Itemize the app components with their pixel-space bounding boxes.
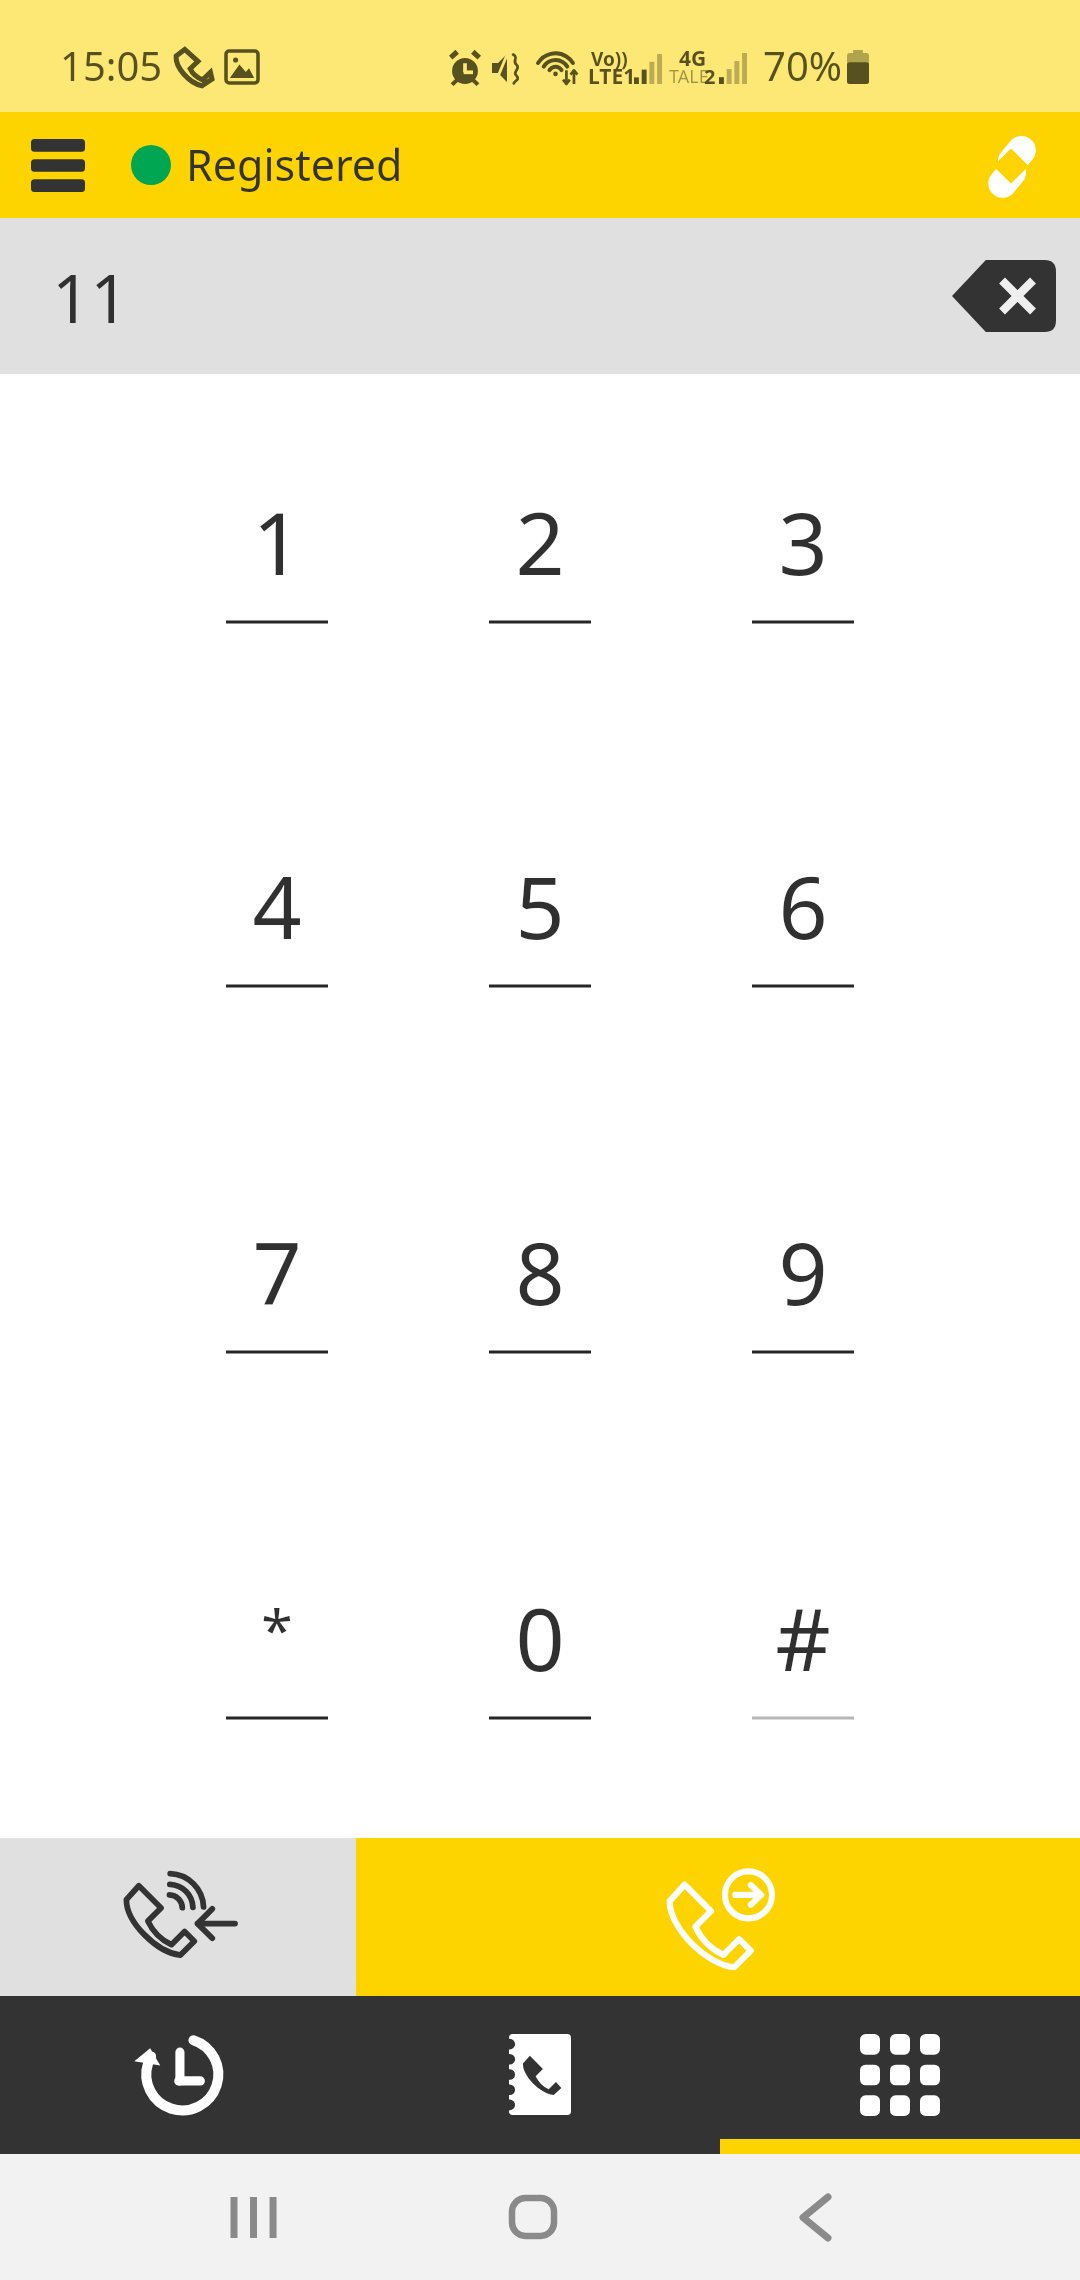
button[interactable]: Home bbox=[463, 2154, 603, 2280]
staticText: 0 bbox=[515, 1579, 565, 1696]
staticText: * bbox=[261, 1590, 293, 1668]
button[interactable]: 6 bbox=[672, 738, 934, 1104]
button[interactable]: 0 bbox=[409, 1470, 671, 1836]
staticText: # bbox=[775, 1579, 831, 1696]
staticText: 2 bbox=[704, 63, 716, 90]
staticText: 5 bbox=[515, 847, 565, 964]
button[interactable]: 9 bbox=[672, 1104, 934, 1470]
staticText: 8 bbox=[515, 1213, 565, 1330]
staticText: 6 bbox=[778, 847, 828, 964]
button[interactable]: 1 bbox=[146, 374, 408, 740]
staticText: 7 bbox=[252, 1213, 302, 1330]
button[interactable]: Back bbox=[745, 2154, 885, 2280]
button[interactable]: 11 bbox=[0, 218, 168, 374]
button[interactable]: 8 bbox=[409, 1104, 671, 1470]
button[interactable]: # bbox=[672, 1470, 934, 1836]
staticText: 3 bbox=[778, 483, 828, 600]
staticText: 70% bbox=[763, 38, 842, 92]
button[interactable]: Recents bbox=[182, 2154, 322, 2280]
staticText: 2 bbox=[515, 483, 565, 600]
staticText: 15:05 bbox=[60, 38, 163, 92]
button[interactable]: Dial pad bbox=[720, 1996, 1080, 2154]
button[interactable]: Call bbox=[356, 1838, 1080, 1996]
button[interactable]: Backspace bbox=[920, 218, 1080, 374]
staticText: 4G bbox=[679, 44, 707, 73]
staticText: 9 bbox=[778, 1213, 828, 1330]
button[interactable]: 3 bbox=[672, 374, 934, 740]
staticText: LTE1 bbox=[588, 62, 636, 91]
button[interactable]: Recent calls bbox=[0, 1996, 360, 2154]
button[interactable]: Incoming call bbox=[0, 1838, 356, 1996]
staticText: Vo)) bbox=[591, 46, 628, 72]
button[interactable]: 2 bbox=[409, 374, 671, 740]
staticText: 11 bbox=[52, 251, 129, 342]
button[interactable]: 5 bbox=[409, 738, 671, 1104]
button[interactable]: * bbox=[146, 1470, 408, 1836]
button[interactable]: Menu bbox=[0, 112, 116, 218]
staticText: 1 bbox=[252, 483, 302, 600]
staticText: Registered bbox=[186, 135, 403, 194]
staticText: TALE bbox=[669, 64, 709, 89]
button[interactable]: Sync bbox=[970, 112, 1080, 218]
button[interactable]: Contacts bbox=[360, 1996, 720, 2154]
button[interactable]: 4 bbox=[146, 738, 408, 1104]
button[interactable]: 7 bbox=[146, 1104, 408, 1470]
staticText: 4 bbox=[252, 847, 302, 964]
